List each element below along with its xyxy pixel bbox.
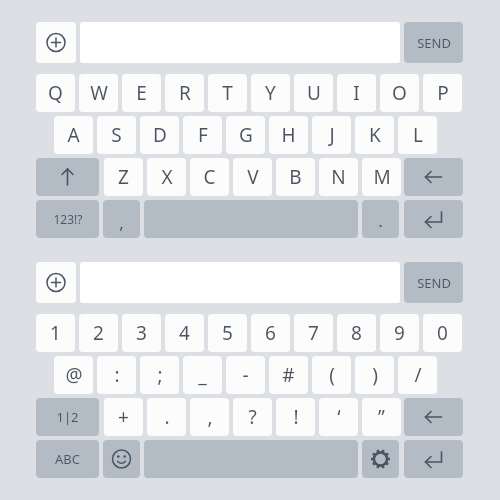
- button[interactable]: ,: [190, 398, 229, 436]
- button[interactable]: M: [362, 158, 401, 196]
- staticText: X: [161, 164, 173, 190]
- button[interactable]: Y: [251, 74, 290, 112]
- staticText: J: [329, 122, 335, 148]
- button[interactable]: 123!?: [36, 200, 99, 238]
- button[interactable]: V: [233, 158, 272, 196]
- button[interactable]: 6: [251, 314, 290, 352]
- staticText: S: [111, 122, 122, 148]
- button[interactable]: 8: [337, 314, 376, 352]
- button[interactable]: 7: [294, 314, 333, 352]
- button[interactable]: J: [312, 116, 351, 154]
- button[interactable]: 3: [122, 314, 161, 352]
- staticText: @: [65, 362, 83, 388]
- button[interactable]: L: [398, 116, 437, 154]
- button[interactable]: Emoji: [103, 440, 140, 478]
- button[interactable]: 5: [208, 314, 247, 352]
- button[interactable]: ”: [362, 398, 401, 436]
- button[interactable]: Enter: [404, 440, 463, 478]
- staticText: !: [293, 404, 299, 430]
- staticText: ?: [248, 404, 257, 430]
- button[interactable]: SEND: [404, 262, 463, 303]
- button[interactable]: U: [294, 74, 333, 112]
- button[interactable]: C: [190, 158, 229, 196]
- staticText: U: [307, 80, 321, 106]
- button[interactable]: K: [355, 116, 394, 154]
- button[interactable]: .: [147, 398, 186, 436]
- button[interactable]: R: [165, 74, 204, 112]
- button[interactable]: Settings: [362, 440, 399, 478]
- button[interactable]: Add attachment: [36, 262, 76, 303]
- button[interactable]: 2: [79, 314, 118, 352]
- button[interactable]: Backspace: [404, 158, 463, 196]
- staticText: :: [114, 362, 120, 388]
- staticText: V: [247, 164, 259, 190]
- button[interactable]: #: [269, 356, 308, 394]
- staticText: 123!?: [53, 211, 83, 227]
- button[interactable]: ‘: [319, 398, 358, 436]
- button[interactable]: O: [380, 74, 419, 112]
- staticText: /: [414, 362, 422, 388]
- button[interactable]: /: [398, 356, 437, 394]
- button[interactable]: Z: [104, 158, 143, 196]
- staticText: _: [198, 362, 207, 388]
- button[interactable]: +: [104, 398, 143, 436]
- staticText: D: [153, 122, 167, 148]
- staticText: R: [179, 80, 191, 106]
- staticText: E: [136, 80, 147, 106]
- button[interactable]: Shift: [36, 158, 99, 196]
- button[interactable]: ;: [140, 356, 179, 394]
- button[interactable]: ?: [233, 398, 272, 436]
- button[interactable]: Enter: [404, 200, 463, 238]
- button[interactable]: S: [97, 116, 136, 154]
- button[interactable]: Backspace: [404, 398, 463, 436]
- button[interactable]: F: [183, 116, 222, 154]
- staticText: Z: [118, 164, 129, 190]
- button[interactable]: D: [140, 116, 179, 154]
- button[interactable]: !: [276, 398, 315, 436]
- button[interactable]: I: [337, 74, 376, 112]
- button[interactable]: :: [97, 356, 136, 394]
- staticText: ABC: [55, 450, 80, 468]
- button[interactable]: Add attachment: [36, 22, 76, 63]
- staticText: .: [378, 209, 383, 232]
- staticText: Y: [265, 80, 276, 106]
- button[interactable]: N: [319, 158, 358, 196]
- staticText: N: [331, 164, 346, 190]
- button[interactable]: E: [122, 74, 161, 112]
- button[interactable]: X: [147, 158, 186, 196]
- staticText: F: [198, 122, 208, 148]
- staticText: W: [90, 80, 108, 106]
- button[interactable]: .: [362, 200, 399, 238]
- button[interactable]: ): [355, 356, 394, 394]
- button[interactable]: 4: [165, 314, 204, 352]
- button[interactable]: Q: [36, 74, 75, 112]
- staticText: ”: [378, 404, 385, 430]
- staticText: G: [239, 122, 253, 148]
- staticText: 8: [351, 320, 362, 346]
- button[interactable]: W: [79, 74, 118, 112]
- staticText: ‘: [337, 404, 341, 430]
- button[interactable]: _: [183, 356, 222, 394]
- button[interactable]: (: [312, 356, 351, 394]
- button[interactable]: 1|2: [36, 398, 99, 436]
- staticText: B: [289, 164, 302, 190]
- button[interactable]: 1: [36, 314, 75, 352]
- button[interactable]: SEND: [404, 22, 463, 63]
- button[interactable]: -: [226, 356, 265, 394]
- button[interactable]: @: [54, 356, 93, 394]
- button[interactable]: ABC: [36, 440, 99, 478]
- button[interactable]: ,: [103, 200, 140, 238]
- staticText: -: [242, 362, 249, 388]
- button[interactable]: B: [276, 158, 315, 196]
- button[interactable]: T: [208, 74, 247, 112]
- button[interactable]: 9: [380, 314, 419, 352]
- button[interactable]: G: [226, 116, 265, 154]
- button[interactable]: 0: [423, 314, 462, 352]
- button[interactable]: P: [423, 74, 462, 112]
- button[interactable]: A: [54, 116, 93, 154]
- button[interactable]: H: [269, 116, 308, 154]
